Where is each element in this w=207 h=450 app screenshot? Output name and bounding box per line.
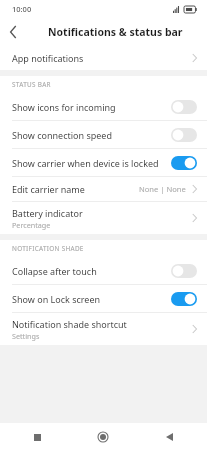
button[interactable]: App notifications	[0, 46, 207, 70]
button[interactable]: Back	[158, 426, 180, 448]
staticText: None | None	[139, 184, 186, 194]
button[interactable]: Off	[171, 100, 197, 114]
button[interactable]: Recents	[26, 426, 48, 448]
staticText: Show carrier when device is locked	[12, 157, 165, 169]
staticText: STATUS BAR	[12, 80, 51, 89]
button[interactable]: Show connection speed	[0, 121, 207, 148]
button[interactable]: On	[171, 292, 197, 306]
staticText: App notifications	[12, 52, 84, 64]
staticText: NOTIFICATION SHADE	[12, 244, 84, 253]
staticText: Settings	[12, 331, 40, 341]
button[interactable]: Back	[0, 19, 26, 45]
staticText: Show icons for incoming notifications	[12, 101, 165, 113]
button[interactable]: Notification shade shortcut	[0, 313, 207, 345]
staticText: Show on Lock screen	[12, 293, 165, 305]
button[interactable]: Show icons for incoming notifications	[0, 93, 207, 120]
staticText: Show connection speed	[12, 129, 165, 141]
staticText: Edit carrier name	[12, 183, 85, 195]
button[interactable]: Show on Lock screen	[0, 285, 207, 312]
staticText: Notification shade shortcut	[12, 318, 127, 330]
button[interactable]: On	[171, 156, 197, 170]
staticText: Notifications & status bar	[48, 25, 183, 39]
staticText: Percentage	[12, 220, 51, 230]
button[interactable]: Battery indicator	[0, 202, 207, 234]
staticText: Collapse after touch	[12, 265, 165, 277]
staticText: 10:00	[12, 4, 32, 14]
button[interactable]: Collapse after touch	[0, 257, 207, 284]
button[interactable]: Edit carrier name	[0, 177, 207, 201]
staticText: Battery indicator	[12, 207, 83, 219]
button[interactable]: Off	[171, 264, 197, 278]
button[interactable]: Show carrier when device is locked	[0, 149, 207, 176]
button[interactable]: Off	[171, 128, 197, 142]
button[interactable]: Home	[92, 426, 114, 448]
